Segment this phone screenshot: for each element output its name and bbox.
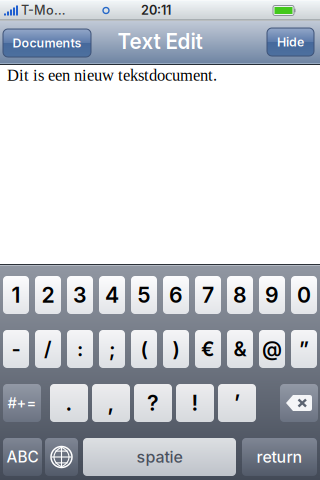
- button[interactable]: €: [195, 330, 221, 368]
- staticText: :: [77, 337, 83, 361]
- button[interactable]: 7: [195, 276, 221, 314]
- staticText: &: [233, 337, 246, 361]
- button[interactable]: #+=: [3, 384, 41, 422]
- button[interactable]: (: [131, 330, 157, 368]
- staticText: ,: [107, 390, 114, 416]
- button[interactable]: 9: [259, 276, 285, 314]
- staticText: Documents: [12, 35, 81, 50]
- staticText: 3: [73, 282, 87, 308]
- button[interactable]: ,: [92, 384, 130, 422]
- staticText: 5: [137, 282, 150, 308]
- button[interactable]: /: [35, 330, 61, 368]
- button[interactable]: 3: [67, 276, 93, 314]
- staticText: ?: [147, 390, 159, 416]
- staticText: ”: [299, 337, 309, 361]
- staticText: 2: [41, 282, 54, 308]
- button[interactable]: return: [242, 438, 317, 476]
- staticText: -: [11, 337, 20, 361]
- staticText: 7: [202, 282, 214, 308]
- staticText: 4: [105, 282, 119, 308]
- button[interactable]: :: [67, 330, 93, 368]
- button[interactable]: @: [259, 330, 285, 368]
- staticText: #+=: [7, 394, 36, 412]
- button[interactable]: ’: [218, 384, 256, 422]
- staticText: ABC: [6, 448, 38, 466]
- button[interactable]: ”: [291, 330, 317, 368]
- staticText: @: [262, 337, 282, 361]
- button[interactable]: &: [227, 330, 253, 368]
- staticText: ): [172, 337, 179, 361]
- staticText: /: [44, 337, 52, 361]
- staticText: €: [201, 337, 215, 361]
- button[interactable]: -: [3, 330, 29, 368]
- button[interactable]: Documents: [3, 29, 91, 57]
- staticText: ’: [234, 390, 240, 416]
- staticText: 20:11: [141, 2, 171, 18]
- staticText: 6: [169, 282, 183, 308]
- button[interactable]: ?: [134, 384, 172, 422]
- staticText: 8: [233, 282, 247, 308]
- staticText: Text Edit: [117, 29, 202, 54]
- button[interactable]: 8: [227, 276, 253, 314]
- staticText: 9: [265, 282, 279, 308]
- staticText: .: [65, 390, 72, 416]
- button[interactable]: ABC: [3, 438, 42, 476]
- staticText: !: [191, 390, 198, 416]
- staticText: 0: [297, 282, 311, 308]
- staticText: Dit is een nieuw tekstdocument.: [7, 66, 217, 84]
- button[interactable]: !: [176, 384, 214, 422]
- button[interactable]: 4: [99, 276, 125, 314]
- button[interactable]: 0: [291, 276, 317, 314]
- button[interactable]: 6: [163, 276, 189, 314]
- button[interactable]: ;: [99, 330, 125, 368]
- staticText: spatie: [136, 447, 182, 467]
- button[interactable]: 5: [131, 276, 157, 314]
- button[interactable]: .: [50, 384, 88, 422]
- button[interactable]: 1: [3, 276, 29, 314]
- staticText: return: [256, 447, 302, 467]
- staticText: T-Mo…: [21, 2, 66, 18]
- button[interactable]: Hide: [267, 28, 314, 56]
- button[interactable]: 2: [35, 276, 61, 314]
- button[interactable]: ): [163, 330, 189, 368]
- button[interactable]: Next keyboard: [45, 438, 78, 476]
- button[interactable]: spatie: [83, 438, 236, 476]
- button[interactable]: Backspace: [280, 384, 318, 422]
- staticText: Hide: [277, 34, 304, 49]
- staticText: (: [140, 337, 147, 361]
- staticText: ;: [109, 337, 115, 361]
- staticText: 1: [11, 282, 20, 308]
